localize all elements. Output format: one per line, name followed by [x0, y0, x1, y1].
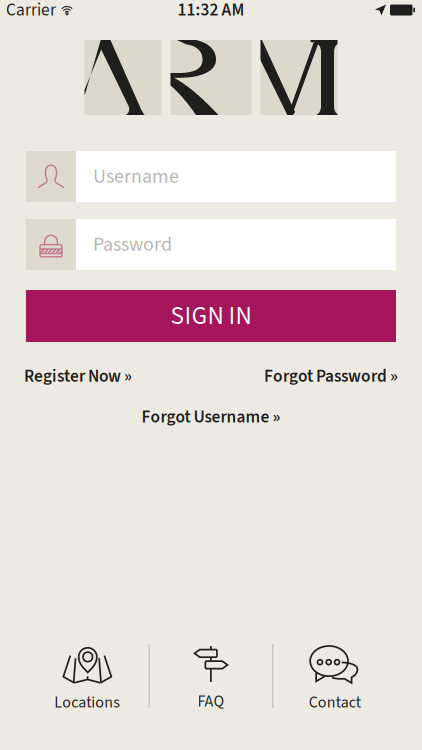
staticText: Register Now » — [24, 364, 132, 389]
button[interactable]: FAQ — [150, 644, 272, 708]
staticText: Password — [93, 230, 172, 259]
staticText: 11:32 AM — [177, 0, 244, 22]
staticText: SIGN IN — [170, 298, 251, 334]
staticText: Contact — [309, 691, 361, 714]
staticText: Forgot Username » — [141, 405, 280, 429]
staticText: Carrier — [6, 0, 56, 22]
button[interactable]: Username — [0, 151, 422, 202]
button[interactable]: Register Now » — [24, 364, 132, 389]
button[interactable]: Password — [0, 219, 422, 270]
button[interactable]: Locations — [26, 644, 149, 708]
button[interactable]: Forgot Password » — [264, 364, 398, 389]
button[interactable]: Contact — [273, 644, 396, 708]
staticText: Forgot Password » — [264, 364, 398, 389]
staticText: Locations — [54, 691, 120, 714]
staticText: FAQ — [197, 690, 224, 713]
button[interactable]: Forgot Username » — [141, 405, 280, 429]
button[interactable]: SIGN IN — [0, 290, 422, 342]
staticText: Username — [93, 162, 179, 191]
